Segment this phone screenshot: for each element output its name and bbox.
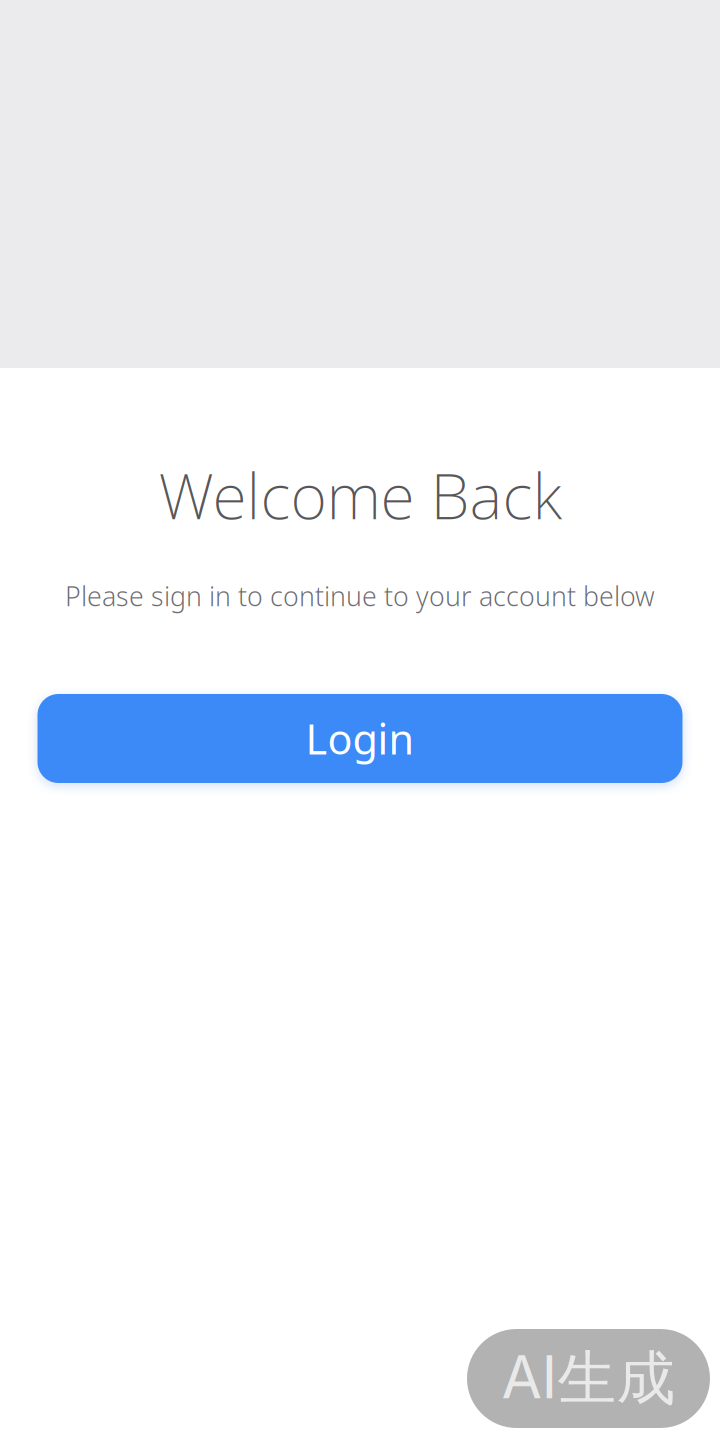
staticText: Login xyxy=(305,711,414,766)
staticText: Welcome Back xyxy=(158,453,561,537)
button[interactable]: Login xyxy=(37,694,682,783)
staticText: Please sign in to continue to your accou… xyxy=(65,578,655,614)
staticText: AI生成 xyxy=(501,1341,675,1416)
